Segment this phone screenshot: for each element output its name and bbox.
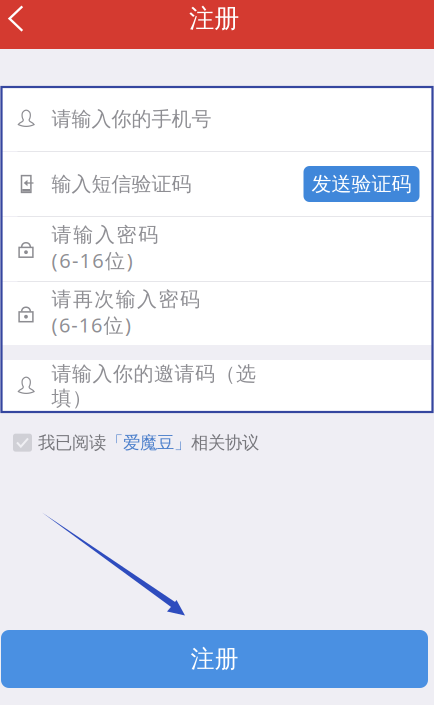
staticText: 注册 [189,3,239,34]
staticText: 相关协议 [191,432,259,453]
staticText: 「爱魔豆」 [106,432,191,453]
staticText: 请输入你的手机号 [51,107,211,131]
staticText: 发送验证码 [311,172,411,196]
staticText: 请输入密码(6-16位) [51,222,212,275]
staticText: 输入短信验证码 [51,172,191,196]
button[interactable]: 注册 [1,630,428,688]
button[interactable]: Back [0,0,46,40]
staticText: 我已阅读 [38,432,106,453]
button[interactable]: 我已阅读 [0,412,259,469]
staticText: 请再次输入密码(6-16位) [51,287,252,340]
staticText: 注册 [190,644,238,674]
button[interactable]: 发送验证码 [303,166,419,202]
staticText: 请输入你的邀请码（选填） [51,361,256,410]
